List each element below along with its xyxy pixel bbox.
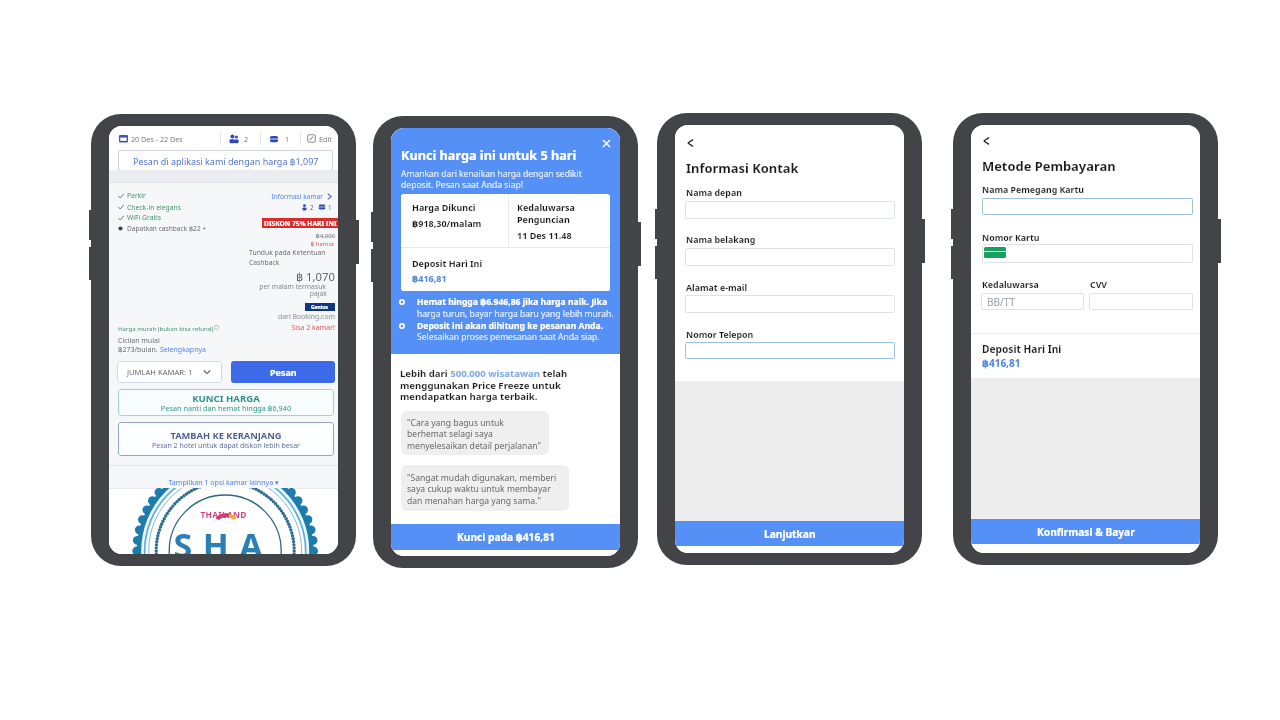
button[interactable] (257, 190, 335, 202)
staticText: 2 (244, 134, 249, 144)
button[interactable]: Selengkapnya (159, 344, 207, 355)
button[interactable] (685, 295, 895, 313)
button[interactable]: Tampilkan 1 opsi kamar lainnya ▾ (109, 471, 338, 488)
staticText: Harga Dikunci (412, 201, 476, 213)
button[interactable] (685, 248, 895, 266)
staticText: Tampilkan 1 opsi kamar lainnya ▾ (109, 477, 338, 487)
staticText: Nama depan (686, 187, 742, 199)
staticText: Kunci pada ฿416,81 (457, 530, 555, 544)
staticText: pajak (187, 289, 327, 298)
staticText: 20 Des - 22 Des (131, 134, 183, 144)
staticText: menggunakan Price Freeze untuk (400, 379, 561, 392)
staticText: dan menahan harga yang sama." (407, 495, 541, 507)
button[interactable]: Pesan di aplikasi kami dengan harga ฿1,0… (118, 150, 333, 171)
staticText: Deposit Hari Ini (982, 342, 1062, 356)
staticText: Deposit Hari Ini (412, 257, 483, 269)
staticText: Lebih dari 500.000 wisatawan telah (400, 367, 568, 380)
button[interactable]: KUNCI HARGA (118, 389, 334, 416)
staticText: 1 (285, 134, 290, 144)
staticText: ฿273/bulan. (118, 345, 158, 355)
staticText: saya cukup waktu untuk membayar (407, 483, 551, 495)
staticText: Amankan dari kenaikan harga dengan sedik… (401, 168, 582, 180)
staticText: Kedaluwarsa (517, 201, 575, 213)
staticText: Lanjutkan (764, 527, 816, 541)
staticText: Alamat e-mail (686, 282, 748, 294)
staticText: ฿4,000 (195, 232, 335, 240)
button[interactable]: Pesan (231, 361, 335, 383)
staticText: Genius (311, 304, 329, 311)
staticText: Pesan (270, 366, 297, 378)
staticText: Harga murah (bukan bisa refund) (118, 324, 214, 332)
staticText: Pesan 2 hotel untuk dapat diskon lebih b… (118, 441, 334, 451)
staticText: 11 Des 11.48 (517, 229, 572, 241)
button[interactable]: Tutup (599, 136, 613, 150)
button[interactable]: Konfirmasi & Bayar (971, 519, 1200, 544)
button[interactable]: Kunci pada ฿416,81 (391, 524, 620, 550)
staticText: TAMBAH KE KERANJANG (118, 429, 334, 442)
staticText: Kedaluwarsa (982, 279, 1039, 291)
staticText: THAILAND (109, 509, 338, 520)
staticText: Deposit ini akan dihitung ke pesanan And… (417, 320, 603, 332)
button[interactable] (685, 201, 895, 219)
staticText: Tunduk pada Ketentuan (249, 248, 326, 257)
staticText: Metode Pembayaran (982, 157, 1116, 175)
staticText: "Cara yang bagus untuk (407, 417, 504, 429)
staticText: Pesan nanti dan hemat hingga ฿6,940 (118, 403, 334, 413)
staticText: Cicilan mulai (118, 336, 160, 346)
staticText: Informasi kamar (183, 192, 323, 201)
staticText: Kunci harga ini untuk 5 hari (401, 146, 577, 163)
staticText: Parkir (127, 191, 146, 200)
staticText: Nama Pemegang Kartu (982, 184, 1085, 196)
button[interactable]: JUMLAH KAMAR: 1 (117, 361, 222, 383)
staticText: Selesaikan proses pemesanan saat Anda si… (417, 331, 600, 343)
staticText: Nomor Telepon (686, 329, 754, 341)
staticText: deposit. Pesan saat Anda siap! (401, 179, 524, 191)
staticText: Edit (319, 134, 332, 144)
staticText: mendapatkan harga terbaik. (400, 390, 538, 403)
staticText: SHA (109, 522, 338, 554)
staticText: DISKON 75% HARI INI (264, 219, 337, 228)
button[interactable]: TAMBAH KE KERANJANG (118, 422, 334, 456)
staticText: Dapatkan cashback ฿22 + (127, 224, 207, 233)
staticText: Informasi Kontak (686, 159, 799, 177)
button[interactable] (685, 342, 895, 359)
staticText: Selengkapnya (160, 345, 206, 355)
staticText: ฿416,81 (412, 272, 447, 284)
staticText: CVV (1090, 279, 1108, 291)
staticText: Hemat hingga ฿6.946,86 jika harga naik. … (417, 296, 608, 308)
button[interactable]: Ubah tanggal (115, 128, 219, 148)
staticText: harga turun, bayar harga baru yang lebih… (417, 308, 614, 320)
staticText: Konfirmasi & Bayar (1037, 525, 1135, 539)
staticText: JUMLAH KAMAR: 1 (127, 367, 193, 377)
button[interactable]: Ubah jumlah tamu (223, 128, 259, 148)
button[interactable]: Kembali (979, 134, 993, 148)
staticText: dari Booking.com (195, 312, 335, 321)
button[interactable]: Lanjutkan (675, 521, 904, 546)
staticText: 1 (328, 203, 332, 211)
staticText: berhemat selagi saya (407, 428, 493, 440)
staticText: Nama belakang (686, 234, 756, 246)
staticText: Cashback (249, 258, 280, 267)
button[interactable]: Ubah jumlah kamar (263, 128, 299, 148)
staticText: Pesan di aplikasi kami dengan harga ฿1,0… (133, 155, 319, 167)
staticText: WiFi Gratis (127, 213, 162, 222)
staticText: "Sangat mudah digunakan, memberi (407, 472, 557, 484)
staticText: Sisa 2 kamar! (195, 323, 335, 333)
staticText: 2 (310, 203, 314, 211)
staticText: menyelesaikan detail perjalanan" (407, 440, 541, 452)
staticText: per malam termasuk (186, 282, 326, 291)
button[interactable] (982, 244, 1193, 263)
staticText: ฿ 1,070 (195, 269, 335, 284)
staticText: Nomor Kartu (982, 232, 1040, 244)
button[interactable]: Kembali (683, 136, 697, 150)
button[interactable]: Edit pencarian (303, 128, 335, 148)
staticText: KUNCI HARGA (118, 392, 334, 405)
button[interactable]: BB/TT (981, 293, 1084, 310)
button[interactable] (1089, 293, 1193, 310)
button[interactable] (982, 198, 1193, 215)
staticText: Check-in elegans (127, 203, 182, 212)
staticText: ฿918,30/malam (412, 217, 482, 229)
staticText: ฿416,81 (982, 356, 1021, 370)
staticText: BB/TT (987, 295, 1016, 309)
staticText: Penguncian (517, 213, 570, 225)
